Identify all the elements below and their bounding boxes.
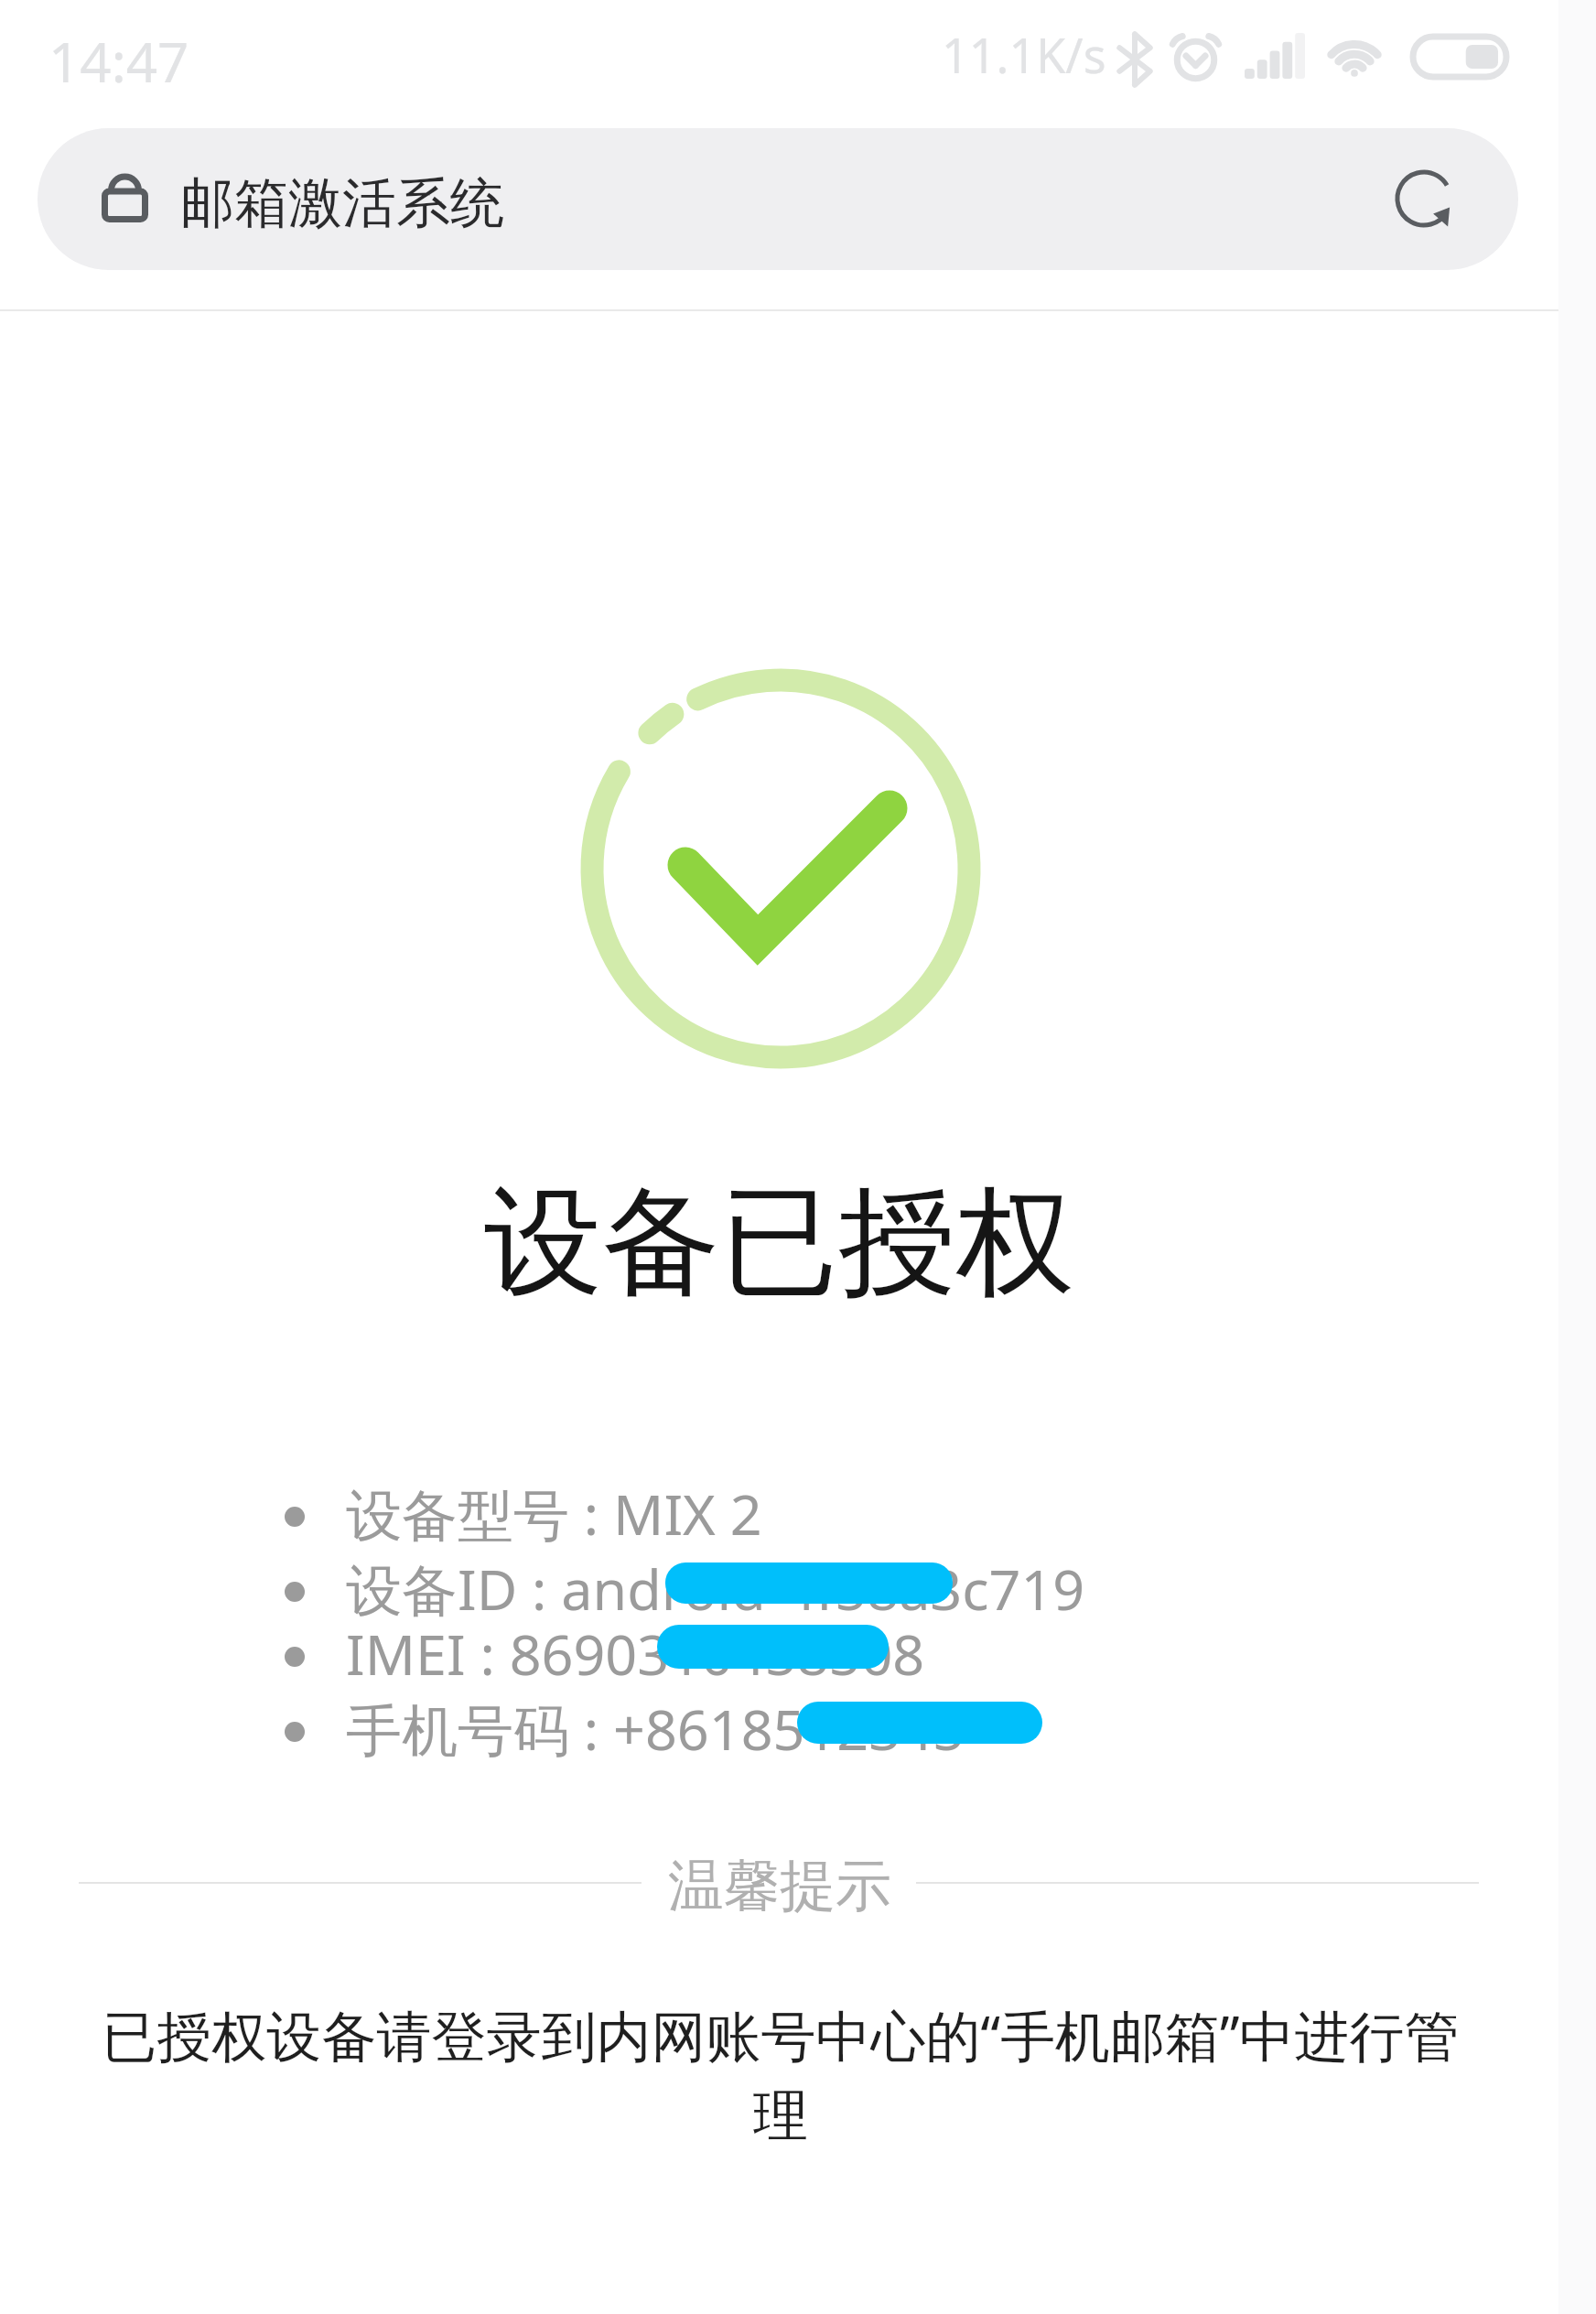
staticText: 14:47 (49, 24, 189, 99)
button[interactable]: Refresh (1374, 148, 1474, 249)
staticText: 已授权设备请登录到内网账号中心的“手机邮箱”中进行管理 (92, 1997, 1470, 2151)
staticText: 手机号码 : +8618512345 (346, 1691, 965, 1767)
staticText: 设备已授权 (484, 1169, 1074, 1318)
staticText: 11.1K/s (942, 22, 1106, 87)
staticText: 设备型号 : MIX 2 (346, 1476, 762, 1552)
staticText: 温馨提示 (668, 1851, 891, 1921)
staticText: IMEI : 8690310458508 (346, 1616, 925, 1692)
staticText: 邮箱激活系统 (180, 169, 504, 237)
staticText: 设备ID : android-4f58a3c719 (346, 1551, 1085, 1627)
button[interactable]: 邮箱激活系统 (38, 128, 1518, 270)
